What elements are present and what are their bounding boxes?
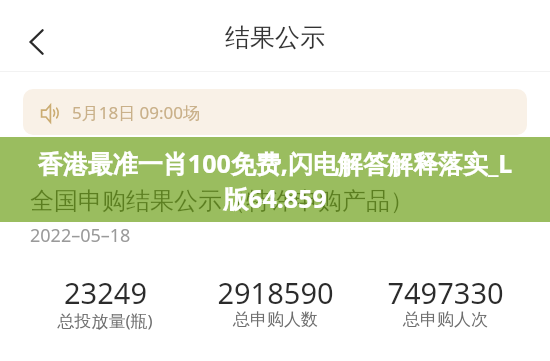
staticText: 总申购人次 <box>403 309 488 330</box>
staticText: 7497330 <box>387 273 504 312</box>
button[interactable]: 7497330 <box>360 273 530 343</box>
staticText: 全国申购结果公示（特许申购产品） <box>30 186 414 216</box>
button[interactable]: Back <box>19 22 59 62</box>
staticText: 总申购人数 <box>233 309 318 330</box>
button[interactable]: 23249 <box>20 273 190 343</box>
staticText: 结果公示 <box>225 22 325 53</box>
staticText: 5月18日 09:00场 <box>72 101 201 124</box>
staticText: 23249 <box>64 273 147 312</box>
staticText: 香港最准一肖100免费,闪电解答解释落实_L版64.859 <box>32 146 518 215</box>
button[interactable]: 2918590 <box>190 273 360 343</box>
staticText: 2918590 <box>217 273 334 312</box>
staticText: 2022–05–18 <box>30 223 131 248</box>
staticText: 总投放量(瓶) <box>57 309 153 332</box>
button[interactable]: 5月18日 09:00场 <box>23 89 527 135</box>
